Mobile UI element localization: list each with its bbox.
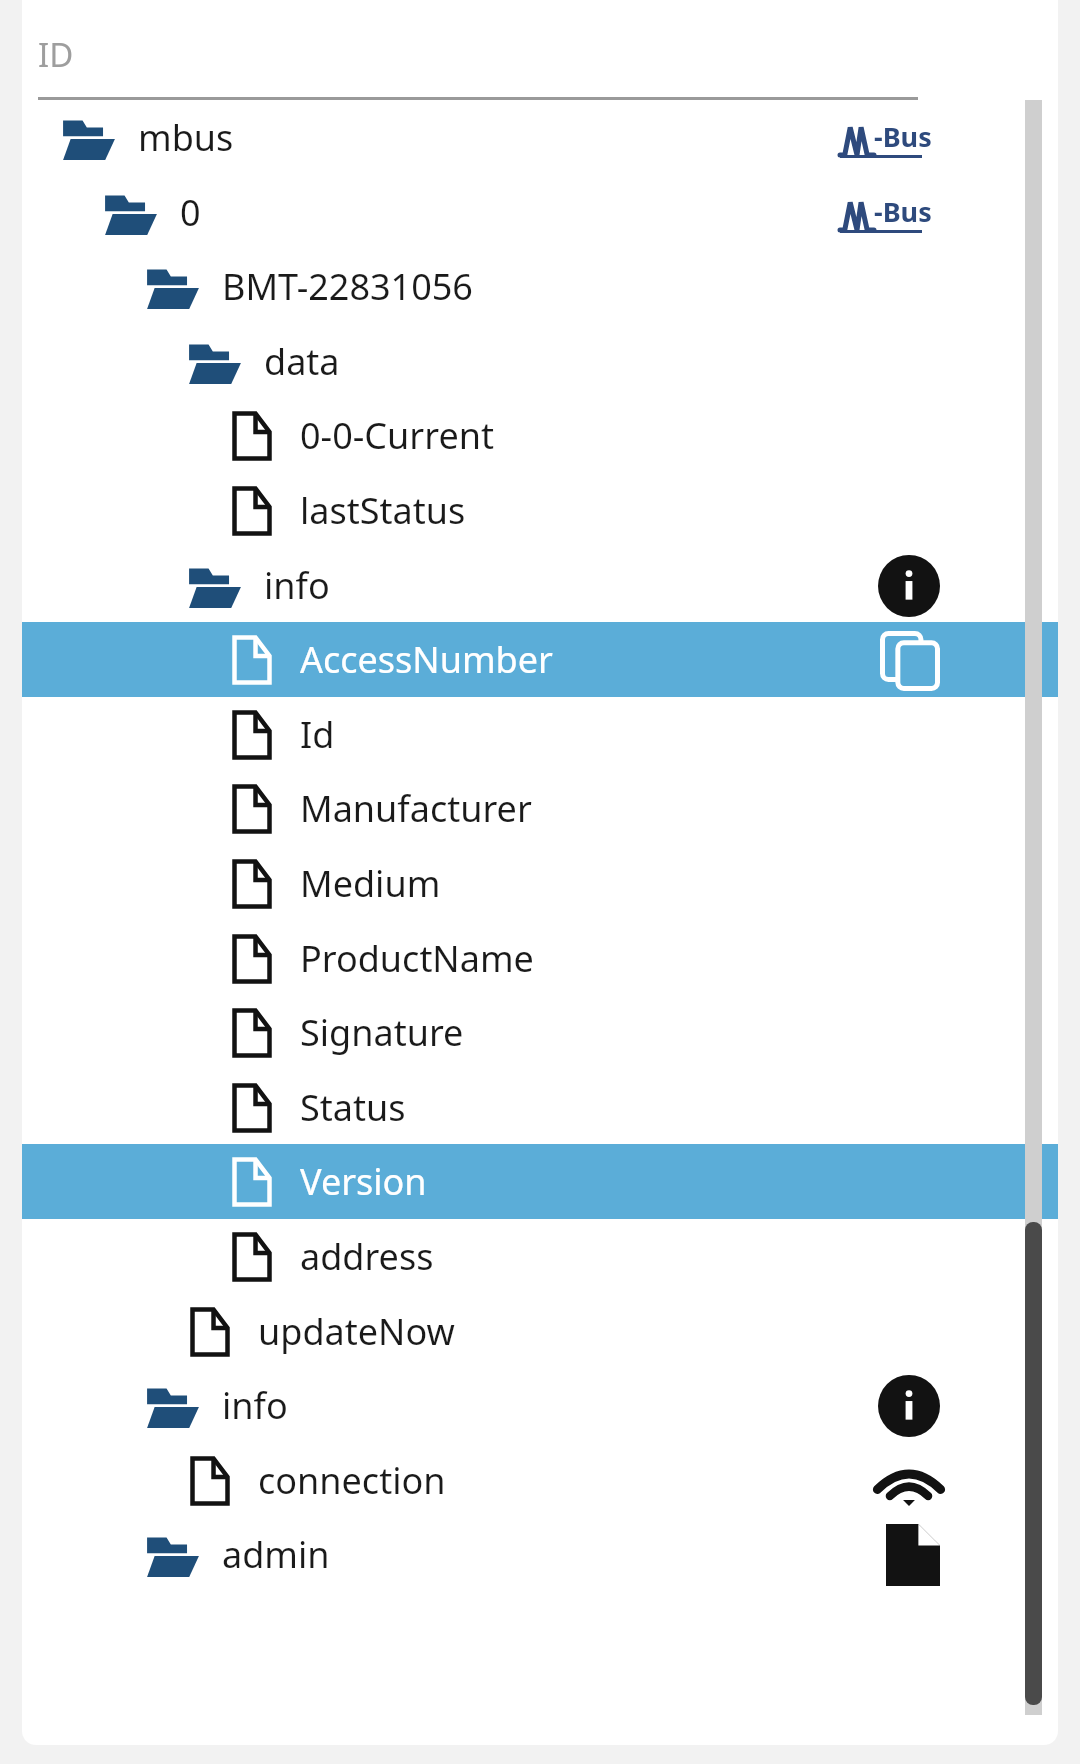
button[interactable]: 0-0-Current — [22, 398, 1058, 473]
staticText: lastStatus — [300, 486, 466, 535]
button[interactable]: Id — [22, 697, 1058, 772]
staticText: mbus — [138, 113, 234, 162]
button[interactable]: connection — [22, 1443, 1058, 1518]
button[interactable]: Connection — [876, 1455, 942, 1507]
staticText: Version — [300, 1157, 427, 1206]
staticText: connection — [258, 1456, 446, 1505]
button[interactable]: Copy — [878, 629, 940, 691]
button[interactable]: mbus — [22, 100, 1058, 175]
button[interactable]: Medium — [22, 846, 1058, 921]
staticText: Medium — [300, 859, 441, 908]
button[interactable]: Document — [886, 1524, 940, 1586]
button[interactable]: ID — [22, 0, 1058, 100]
button[interactable]: Info — [878, 555, 940, 617]
button[interactable]: AccessNumber — [22, 622, 1058, 697]
button[interactable]: Signature — [22, 995, 1058, 1070]
button[interactable]: M-Bus — [840, 118, 932, 158]
staticText: Id — [300, 710, 335, 759]
button[interactable]: info — [22, 548, 1058, 623]
staticText: Status — [300, 1083, 406, 1132]
staticText: BMT-22831056 — [222, 262, 473, 311]
staticText: data — [264, 337, 340, 386]
staticText: info — [264, 561, 330, 610]
staticText: admin — [222, 1530, 330, 1579]
button[interactable]: Status — [22, 1070, 1058, 1145]
staticText: 0-0-Current — [300, 411, 494, 460]
staticText: Manufacturer — [300, 784, 532, 833]
button[interactable]: updateNow — [22, 1294, 1058, 1369]
staticText: -Bus — [874, 193, 932, 230]
button[interactable]: ProductName — [22, 921, 1058, 996]
button[interactable]: data — [22, 324, 1058, 399]
button[interactable]: Version — [22, 1144, 1058, 1219]
staticText: ID — [38, 32, 74, 77]
button[interactable]: Manufacturer — [22, 771, 1058, 846]
button[interactable]: address — [22, 1219, 1058, 1294]
staticText: -Bus — [874, 118, 932, 155]
staticText: ProductName — [300, 934, 534, 983]
button[interactable]: admin — [22, 1517, 1058, 1592]
button[interactable]: Info — [878, 1375, 940, 1437]
staticText: AccessNumber — [300, 635, 553, 684]
button[interactable]: BMT-22831056 — [22, 249, 1058, 324]
button[interactable]: 0 — [22, 175, 1058, 250]
staticText: 0 — [180, 188, 201, 237]
staticText: info — [222, 1381, 288, 1430]
staticText: address — [300, 1232, 434, 1281]
staticText: Signature — [300, 1008, 464, 1057]
button[interactable]: M-Bus — [840, 193, 932, 233]
button[interactable]: info — [22, 1368, 1058, 1443]
staticText: updateNow — [258, 1307, 455, 1356]
button[interactable]: lastStatus — [22, 473, 1058, 548]
